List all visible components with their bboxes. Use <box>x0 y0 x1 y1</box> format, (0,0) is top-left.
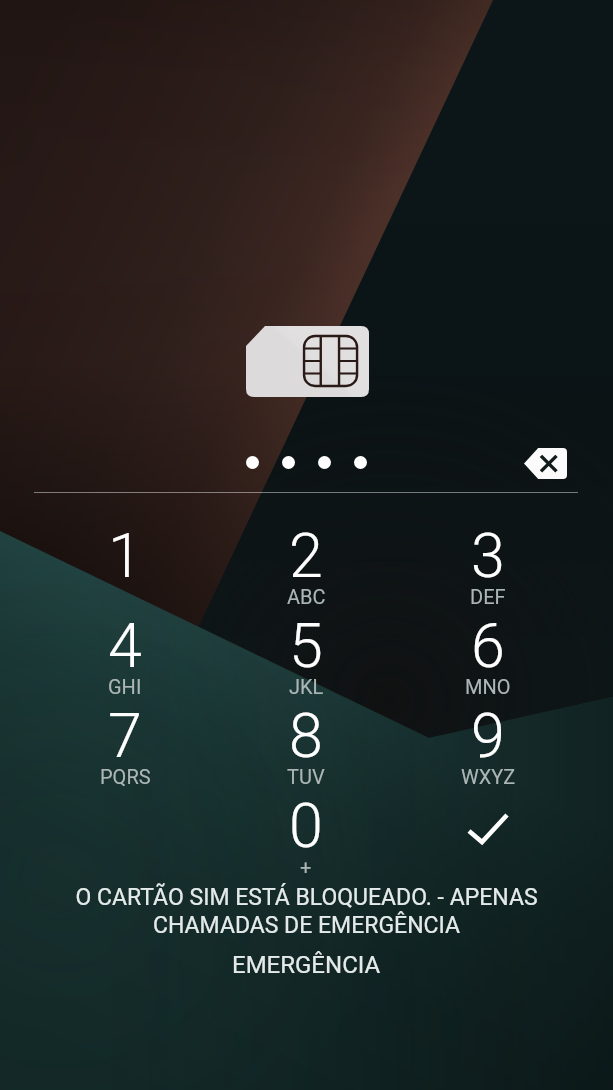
button[interactable] <box>430 691 546 781</box>
staticText: 9 <box>471 700 505 771</box>
staticText: 3 <box>471 520 505 591</box>
button[interactable] <box>430 601 546 691</box>
button[interactable] <box>67 691 183 781</box>
button[interactable]: Backspace <box>509 439 581 487</box>
staticText: 7 <box>108 700 142 771</box>
staticText: 8 <box>289 700 323 771</box>
button[interactable] <box>248 781 364 871</box>
staticText: + <box>300 855 312 878</box>
staticText: 2 <box>289 520 323 591</box>
staticText: PQRS <box>100 765 151 788</box>
staticText: JKL <box>289 675 324 698</box>
staticText: 5 <box>289 610 323 681</box>
button[interactable] <box>67 601 183 691</box>
button[interactable] <box>248 511 364 601</box>
staticText: 4 <box>108 610 142 681</box>
staticText: 1 <box>108 520 142 591</box>
staticText: GHI <box>108 675 142 698</box>
staticText: 6 <box>471 610 505 681</box>
staticText: ABC <box>287 585 326 608</box>
staticText: MNO <box>465 675 511 698</box>
button[interactable] <box>248 601 364 691</box>
button[interactable] <box>67 511 183 601</box>
button[interactable]: Enter <box>430 790 546 876</box>
button[interactable]: EMERGÊNCIA <box>212 945 401 985</box>
staticText: 0 <box>289 790 323 861</box>
staticText: TUV <box>287 765 325 788</box>
button[interactable] <box>248 691 364 781</box>
staticText: WXYZ <box>461 765 516 788</box>
button[interactable] <box>430 511 546 601</box>
staticText: O CARTÃO SIM ESTÁ BLOQUEADO. - APENAS CH… <box>14 884 599 939</box>
staticText: DEF <box>470 585 506 608</box>
staticText: EMERGÊNCIA <box>232 951 381 979</box>
